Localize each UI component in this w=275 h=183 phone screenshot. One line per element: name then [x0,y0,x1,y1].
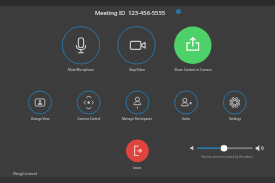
staticText: Stop Video [102,68,172,74]
staticText: Volume control is locked by the admin [187,155,267,161]
staticText: Share Content or Camera [148,68,238,74]
button[interactable]: Mute Microphone [62,27,99,64]
button[interactable]: Manage Participants [126,91,149,114]
button[interactable]: Stop Video [118,27,155,64]
button[interactable]: Volume up [255,144,263,152]
button[interactable]: Camera Control [77,91,100,114]
staticText: Invite [161,117,211,123]
staticText: Mute Microphone [46,68,116,74]
staticText: Camera Control [59,117,119,123]
button[interactable]: Change View [29,91,52,114]
button[interactable]: Volume down [188,144,196,152]
staticText: RingCentral [5,170,45,179]
staticText: Change View [10,117,70,123]
button[interactable]: Share Content or Camera [174,27,211,64]
button[interactable]: Meeting information [176,9,181,14]
staticText: Manage Participants [102,117,172,123]
staticText: Meeting ID 123-456-5555 [70,9,190,21]
button[interactable]: Settings [223,91,246,114]
button[interactable]: Leave meeting [126,139,149,162]
staticText: Settings [210,117,260,123]
button[interactable]: Invite [175,91,198,114]
staticText: Leave [117,166,157,172]
